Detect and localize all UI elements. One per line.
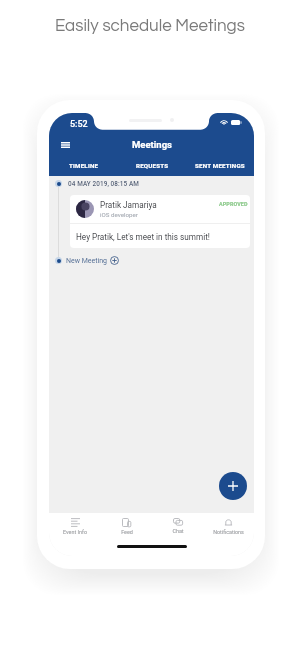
button[interactable]: Notifications <box>203 518 254 540</box>
staticText: SENT MEETINGS <box>195 162 245 169</box>
staticText: Hey Pratik, Let's meet in this summit! <box>76 232 210 242</box>
button[interactable]: Feed <box>101 518 152 540</box>
button[interactable]: Open navigation menu <box>52 136 78 154</box>
button[interactable]: TIMELINE <box>49 159 118 172</box>
staticText: iOS developer <box>100 211 138 218</box>
button[interactable]: New meeting <box>219 472 247 500</box>
staticText: Easily schedule Meetings <box>55 17 245 35</box>
button[interactable]: REQUESTS <box>118 159 186 172</box>
staticText: Feed <box>121 529 133 535</box>
staticText: 04 MAY 2019, 08:15 AM <box>68 180 140 188</box>
button[interactable]: SENT MEETINGS <box>186 159 254 172</box>
staticText: 5:52 <box>70 119 88 130</box>
staticText: New Meeting <box>66 257 108 265</box>
button[interactable]: Event Info <box>49 518 101 540</box>
button[interactable]: Pratik Jamariya <box>70 195 250 248</box>
button[interactable]: New Meeting <box>66 254 119 267</box>
staticText: Chat <box>172 528 184 534</box>
button[interactable]: Chat <box>152 518 203 540</box>
staticText: Event Info <box>63 529 87 535</box>
staticText: Notifications <box>213 529 244 535</box>
staticText: REQUESTS <box>136 162 169 169</box>
staticText: Meetings <box>132 139 172 150</box>
staticText: TIMELINE <box>69 162 99 169</box>
staticText: Pratik Jamariya <box>100 200 157 210</box>
staticText: APPROVED <box>219 201 248 207</box>
